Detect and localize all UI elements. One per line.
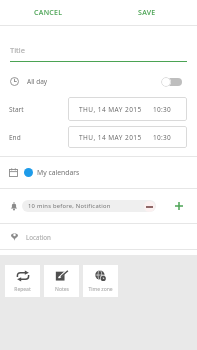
button[interactable]: SAVE <box>97 0 197 25</box>
button[interactable]: THU, 14 MAY 2015 <box>68 97 187 121</box>
staticText: Time zone <box>88 286 113 293</box>
button[interactable]: THU, 14 MAY 2015 <box>68 126 187 148</box>
button[interactable]: Location <box>0 224 197 249</box>
button[interactable]: Title <box>0 38 197 61</box>
staticText: End <box>9 133 21 142</box>
staticText: THU, 14 MAY 2015 <box>79 105 142 114</box>
staticText: Repeat <box>14 286 31 293</box>
staticText: 10:30 <box>153 133 172 142</box>
staticText: My calendars <box>37 168 80 177</box>
button[interactable]: Notes <box>44 265 79 297</box>
button[interactable]: Repeat <box>5 265 40 297</box>
button[interactable]: Time zone <box>83 265 118 297</box>
button[interactable]: My calendars <box>0 157 197 188</box>
staticText: CANCEL <box>34 8 63 18</box>
staticText: All day <box>27 77 48 86</box>
staticText: SAVE <box>138 8 156 18</box>
staticText: Start <box>9 105 24 114</box>
button[interactable]: All day <box>0 68 197 94</box>
staticText: 10:30 <box>153 105 172 114</box>
button[interactable]: Add notification <box>170 197 188 215</box>
staticText: THU, 14 MAY 2015 <box>79 133 142 142</box>
staticText: Location <box>26 233 51 241</box>
button[interactable]: CANCEL <box>0 0 97 25</box>
staticText: 10 mins before, Notification <box>28 202 111 210</box>
staticText: Notes <box>55 286 69 293</box>
button[interactable]: 10 mins before, Notification <box>22 200 156 212</box>
staticText: Title <box>10 45 25 55</box>
